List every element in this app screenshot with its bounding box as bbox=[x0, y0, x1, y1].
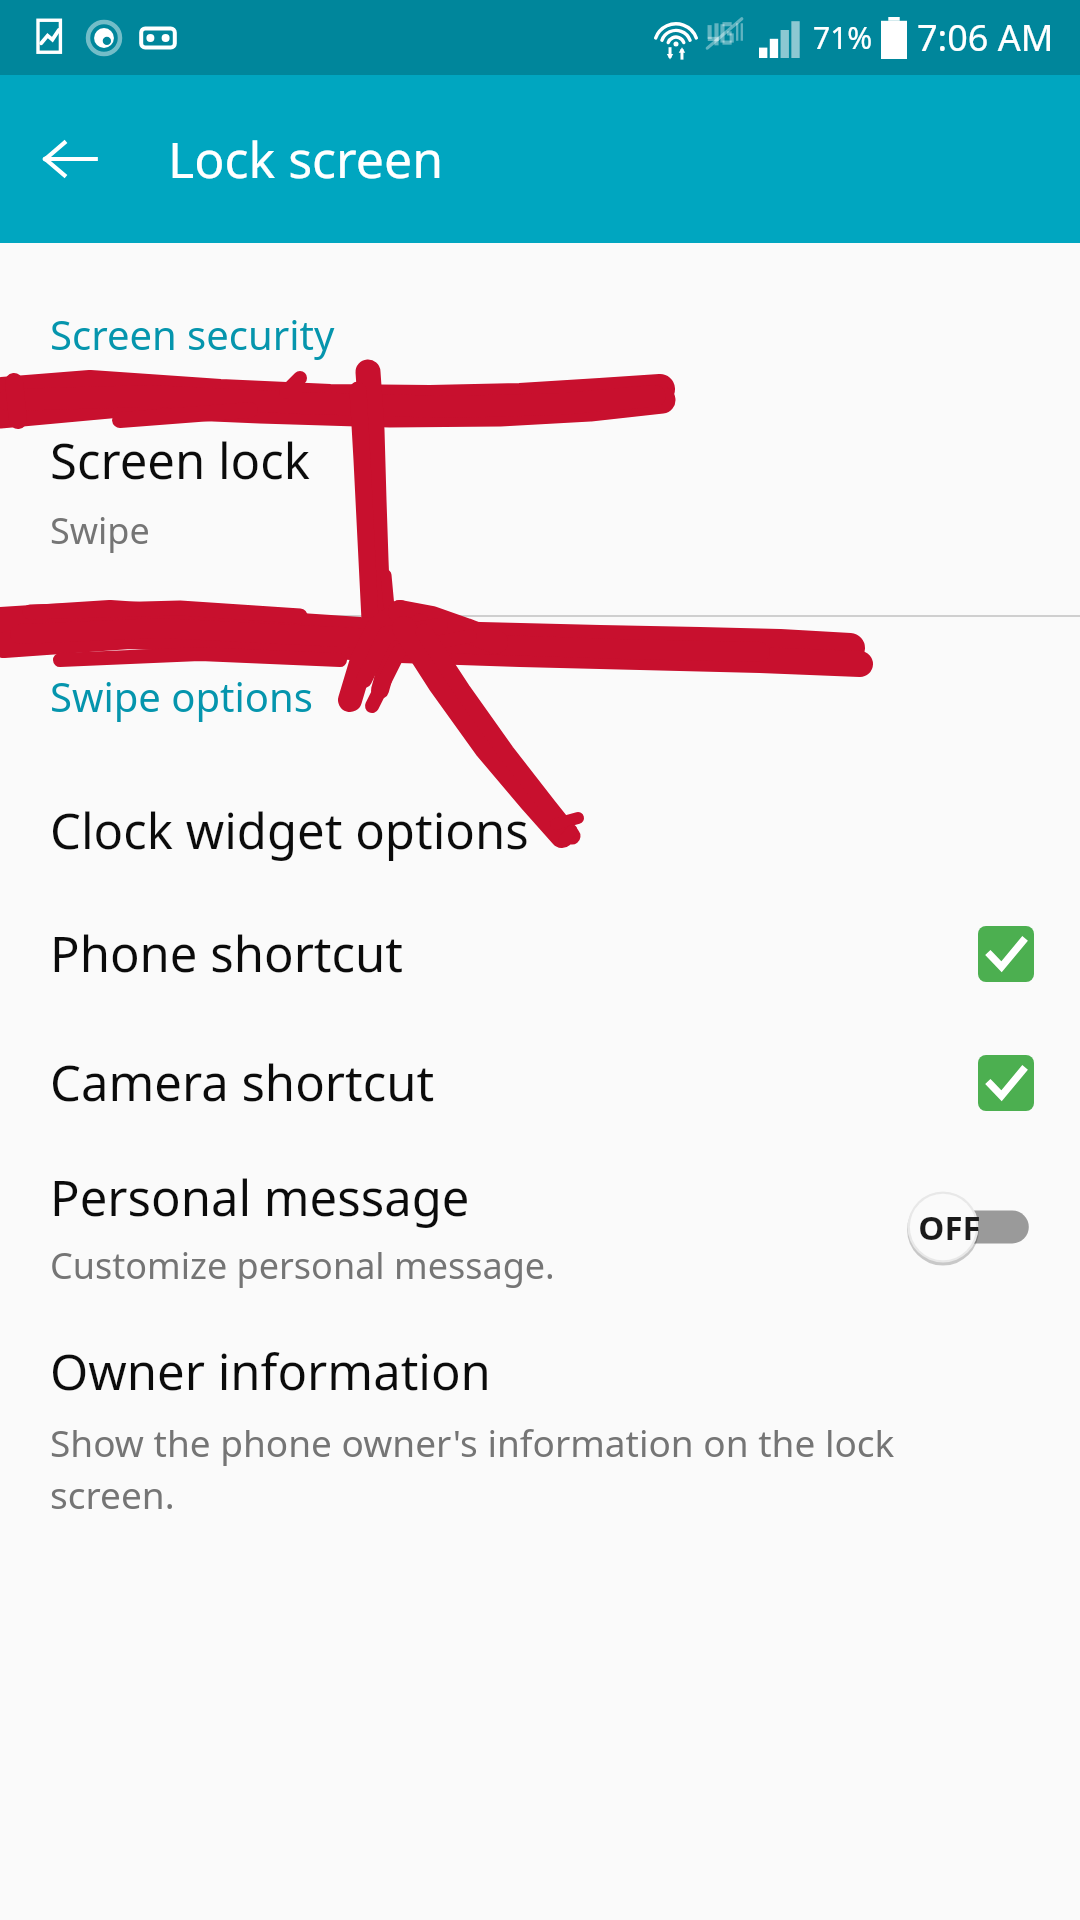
staticText: Clock widget options bbox=[50, 797, 529, 864]
staticText: OFF bbox=[918, 1205, 981, 1250]
staticText: Phone shortcut bbox=[50, 920, 978, 987]
button[interactable]: Owner information bbox=[0, 1334, 1080, 1524]
staticText: Swipe bbox=[50, 506, 150, 555]
button[interactable]: Phone shortcut bbox=[0, 904, 1080, 1003]
button[interactable]: Screen lock bbox=[0, 423, 1080, 559]
staticText: Screen lock bbox=[50, 427, 310, 494]
staticText: Camera shortcut bbox=[50, 1049, 978, 1116]
button[interactable]: Clock widget options bbox=[0, 791, 1080, 870]
staticText: 71% bbox=[813, 17, 873, 58]
staticText: Owner information bbox=[50, 1338, 491, 1405]
staticText: Personal message bbox=[50, 1164, 470, 1231]
staticText: 7:06 AM bbox=[917, 13, 1054, 62]
button[interactable]: Back bbox=[34, 123, 106, 195]
staticText: Lock screen bbox=[168, 125, 444, 193]
button[interactable]: Personal message bbox=[0, 1154, 1080, 1300]
staticText: Screen security bbox=[50, 307, 335, 361]
staticText: Show the phone owner's information on th… bbox=[50, 1417, 990, 1520]
staticText: Customize personal message. bbox=[50, 1241, 555, 1290]
button[interactable]: Camera shortcut bbox=[0, 1033, 1080, 1132]
staticText: Swipe options bbox=[50, 669, 313, 723]
